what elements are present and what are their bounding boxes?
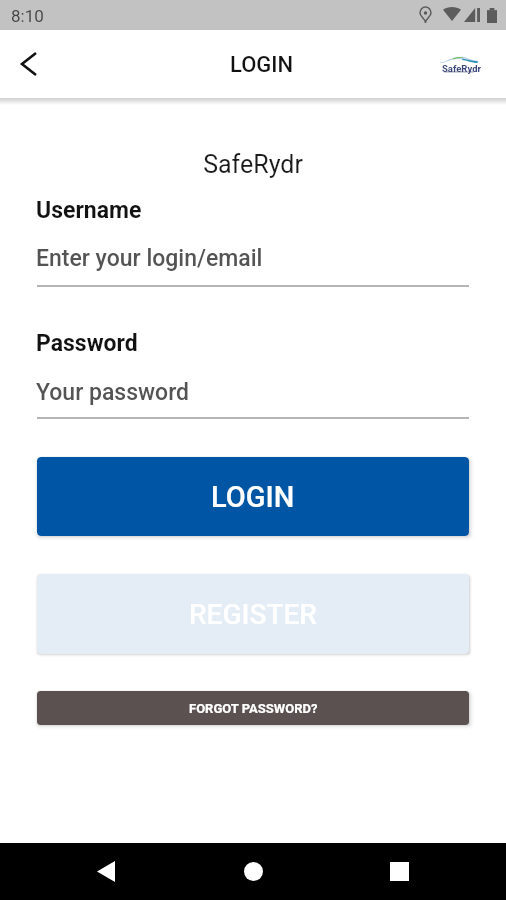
button[interactable]: Back xyxy=(82,843,130,900)
staticText: Password xyxy=(36,330,138,357)
staticText: 8:10 xyxy=(11,6,44,26)
button[interactable]: Recent apps xyxy=(375,843,423,900)
button[interactable]: FORGOT PASSWORD? xyxy=(37,691,469,725)
staticText: FORGOT PASSWORD? xyxy=(189,701,318,716)
staticText: Your password xyxy=(36,379,190,406)
button[interactable]: Home xyxy=(229,843,277,900)
staticText: LOGIN xyxy=(211,480,295,514)
button[interactable]: SafeRydr logo xyxy=(430,42,488,86)
staticText: Enter your login/email xyxy=(36,245,263,272)
staticText: SafeRydr xyxy=(442,63,481,74)
staticText: LOGIN xyxy=(230,52,294,78)
staticText: SafeRydr xyxy=(0,150,506,179)
staticText: REGISTER xyxy=(189,598,317,631)
staticText: Username xyxy=(36,197,142,224)
button[interactable]: REGISTER xyxy=(37,574,469,654)
button[interactable]: Back xyxy=(7,30,51,98)
button[interactable]: LOGIN xyxy=(37,457,469,536)
